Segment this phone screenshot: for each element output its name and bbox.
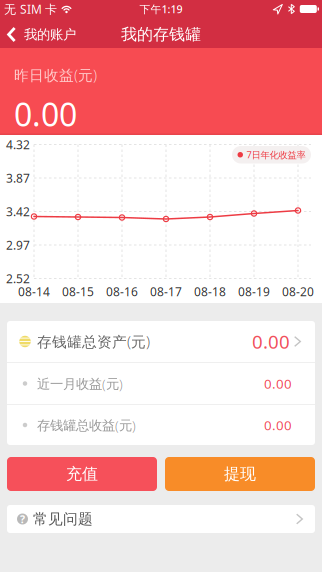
button[interactable]: 近一月收益(元) xyxy=(7,363,315,404)
button[interactable]: 提现 xyxy=(165,457,315,491)
staticText: 08-14 xyxy=(18,283,50,299)
button[interactable]: 充值 xyxy=(7,457,157,491)
staticText: 2.97 xyxy=(6,237,30,253)
staticText: 提现 xyxy=(224,464,256,484)
staticText: 0.00 xyxy=(14,93,77,135)
staticText: 我的账户 xyxy=(24,26,76,43)
staticText: 08-18 xyxy=(194,283,226,299)
staticText: 7日年化收益率 xyxy=(246,149,305,161)
staticText: 08-19 xyxy=(238,283,270,299)
button[interactable]: 我的账户 xyxy=(0,19,76,49)
staticText: 0.00 xyxy=(264,416,292,434)
staticText: 3.42 xyxy=(6,203,30,219)
button[interactable]: 存钱罐总资产(元) xyxy=(7,321,315,362)
staticText: 4.32 xyxy=(6,136,30,152)
staticText: 昨日收益(元) xyxy=(14,65,97,85)
staticText: 充值 xyxy=(66,464,98,484)
button[interactable]: 存钱罐总收益(元) xyxy=(7,405,315,445)
staticText: 下午1:19 xyxy=(139,2,182,16)
staticText: 常见问题 xyxy=(33,510,93,528)
staticText: 3.87 xyxy=(6,170,30,186)
staticText: 无 SIM 卡 xyxy=(4,1,57,17)
staticText: 08-16 xyxy=(106,283,138,299)
staticText: 0.00 xyxy=(264,375,292,392)
staticText: 2.52 xyxy=(6,270,30,286)
staticText: 08-20 xyxy=(282,283,314,299)
staticText: 0.00 xyxy=(252,329,290,354)
staticText: 08-17 xyxy=(150,283,182,299)
button[interactable]: ? xyxy=(7,505,315,533)
staticText: 08-15 xyxy=(62,283,94,299)
staticText: 我的存钱罐 xyxy=(121,25,201,44)
staticText: ? xyxy=(20,512,25,526)
staticText: 近一月收益(元) xyxy=(37,375,123,392)
staticText: 存钱罐总收益(元) xyxy=(37,416,136,434)
staticText: 存钱罐总资产(元) xyxy=(37,332,150,351)
